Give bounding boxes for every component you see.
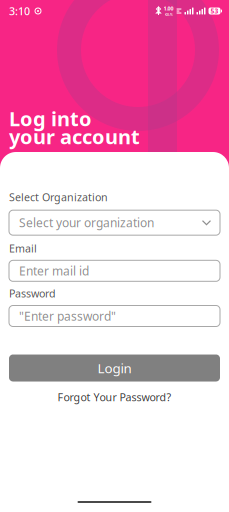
staticText: 3:10 bbox=[9, 4, 30, 18]
staticText: Password bbox=[9, 286, 56, 300]
staticText: Select your organization bbox=[19, 215, 154, 231]
button[interactable]: Login bbox=[9, 354, 220, 381]
staticText: your account bbox=[9, 123, 140, 150]
button[interactable]: Select your organization bbox=[9, 210, 220, 235]
staticText: Log into bbox=[9, 105, 92, 132]
button[interactable]: "Enter password" bbox=[9, 305, 220, 326]
staticText: "Enter password" bbox=[19, 308, 116, 324]
staticText: Enter mail id bbox=[19, 263, 89, 279]
button[interactable]: Forgot Your Password? bbox=[9, 390, 220, 403]
staticText: Email bbox=[9, 241, 37, 255]
staticText: 1.00 bbox=[163, 5, 173, 12]
staticText: Select Organization bbox=[9, 190, 108, 204]
staticText: 53 bbox=[210, 7, 218, 15]
button[interactable]: Enter mail id bbox=[9, 260, 220, 281]
staticText: Login bbox=[97, 359, 131, 377]
staticText: KB/S bbox=[164, 12, 172, 17]
staticText: Forgot Your Password? bbox=[57, 390, 171, 404]
